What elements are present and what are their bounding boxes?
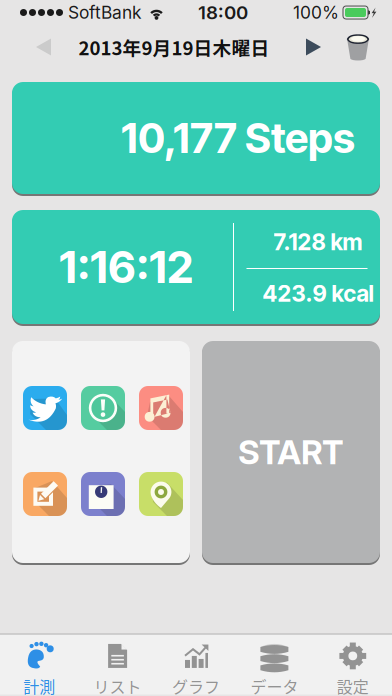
button[interactable]: START [202,341,380,563]
button[interactable]: Previous day [12,25,75,69]
staticText: 18:00 [198,1,248,24]
button[interactable]: Memo [23,472,67,516]
staticText: グラフ [172,674,220,696]
staticText: 7.128 km [273,228,362,256]
staticText: SoftBank [68,2,142,23]
staticText: 計測 [23,674,55,696]
button[interactable]: Delete [336,25,380,69]
button[interactable]: 計測 [0,640,78,696]
button[interactable]: リスト [78,640,157,696]
staticText: 423.9 kcal [262,280,373,307]
staticText: 設定 [337,674,369,696]
button[interactable]: グラフ [157,640,235,696]
staticText: 2013年9月19日木曜日 [78,33,269,60]
staticText: 1:16:12 [59,240,193,294]
staticText: データ [250,674,298,696]
button[interactable]: Share on Twitter [23,386,67,430]
button[interactable]: Weight [81,472,125,516]
staticText: START [238,432,344,472]
staticText: 100% [293,2,339,23]
button[interactable]: Next day [291,25,336,69]
button[interactable]: Music [139,386,183,430]
staticText: リスト [94,674,142,696]
button[interactable]: Info [81,386,125,430]
button[interactable]: Map [139,472,183,516]
button[interactable]: 設定 [314,640,392,696]
staticText: 10,177 Steps [121,113,355,163]
button[interactable]: データ [235,640,314,696]
